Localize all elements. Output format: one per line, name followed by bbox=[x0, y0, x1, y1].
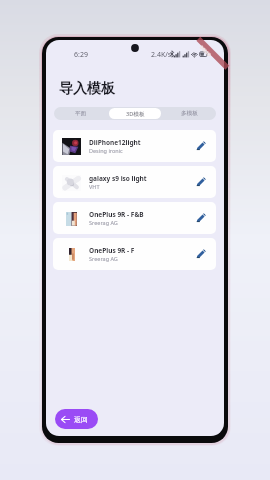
staticText: 导入模板 bbox=[59, 80, 115, 98]
button[interactable]: OnePlus 9R - F&B bbox=[53, 202, 216, 234]
button[interactable]: 3D模板 bbox=[109, 108, 161, 119]
staticText: OnePlus 9R - F bbox=[89, 246, 135, 255]
staticText: 2.4K/s bbox=[151, 50, 172, 60]
button[interactable]: Edit bbox=[193, 246, 209, 262]
staticText: DEMO bbox=[199, 44, 213, 58]
staticText: Desing ironic bbox=[89, 147, 123, 154]
button[interactable]: 多模板 bbox=[163, 108, 215, 119]
staticText: 平面 bbox=[75, 110, 87, 117]
staticText: Sreerag AG bbox=[89, 255, 118, 262]
button[interactable]: 返回 bbox=[55, 409, 98, 429]
staticText: Sreerag AG bbox=[89, 219, 118, 226]
staticText: DiiPhone12light bbox=[89, 138, 141, 147]
button[interactable]: OnePlus 9R - F bbox=[53, 238, 216, 270]
button[interactable]: DiiPhone12light bbox=[53, 130, 216, 162]
staticText: 返回 bbox=[74, 415, 88, 424]
button[interactable]: Edit bbox=[193, 174, 209, 190]
button[interactable]: galaxy s9 iso light bbox=[53, 166, 216, 198]
other: Demo bbox=[0, 0, 270, 480]
button[interactable]: Edit bbox=[193, 210, 209, 226]
staticText: VHT bbox=[89, 183, 100, 190]
staticText: 3D模板 bbox=[126, 110, 145, 118]
staticText: galaxy s9 iso light bbox=[89, 174, 147, 183]
button[interactable]: 平面 bbox=[55, 108, 107, 119]
button[interactable]: Edit bbox=[193, 138, 209, 154]
staticText: OnePlus 9R - F&B bbox=[89, 210, 144, 219]
staticText: 6:29 bbox=[74, 50, 88, 60]
staticText: 多模板 bbox=[181, 110, 198, 117]
